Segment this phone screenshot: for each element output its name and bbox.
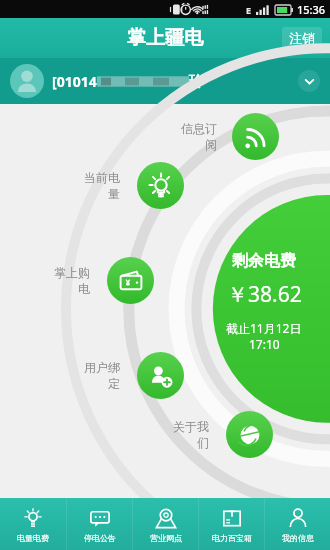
button[interactable]: 停电公告 [67, 498, 132, 550]
staticText: 电力百宝箱 [212, 533, 252, 543]
staticText: 15:36 [297, 2, 326, 17]
staticText: 用户绑定 [73, 360, 120, 392]
staticText: 信息订阅 [170, 121, 217, 153]
button[interactable]: 关于我们 [226, 411, 273, 458]
staticText: 17:10 [249, 336, 280, 352]
staticText: 剩余电费 [232, 251, 296, 271]
button[interactable]: 营业网点 [133, 498, 198, 550]
staticText: 截止11月12日 [226, 320, 302, 336]
button[interactable]: 信息订阅 [232, 113, 279, 160]
button[interactable]: 电力百宝箱 [199, 498, 264, 550]
staticText: 当前电量 [73, 170, 120, 202]
button[interactable]: [01014 [0, 58, 330, 104]
staticText: 营业网点 [150, 533, 182, 543]
staticText: E [246, 4, 252, 16]
staticText: 关于我们 [162, 419, 209, 451]
staticText: 注销 [289, 30, 315, 46]
staticText: [01014 [52, 72, 97, 91]
staticText: 停电公告 [84, 533, 116, 543]
button[interactable]: 当前电量 [137, 162, 184, 209]
staticText: ￥38.62 [227, 280, 302, 309]
staticText: 玲 [189, 73, 203, 91]
button[interactable]: 展开用户列表 [298, 70, 320, 92]
button[interactable]: 掌上购电 [107, 257, 154, 304]
button[interactable]: 注销 [282, 27, 322, 49]
button[interactable]: 用户绑定 [137, 352, 184, 399]
staticText: 我的信息 [282, 533, 314, 543]
button[interactable]: 我的信息 [265, 498, 330, 550]
staticText: 掌上购电 [43, 265, 90, 297]
button[interactable]: 电量电费 [0, 498, 66, 550]
staticText: 电量电费 [17, 533, 49, 543]
staticText: 掌上疆电 [127, 26, 203, 50]
